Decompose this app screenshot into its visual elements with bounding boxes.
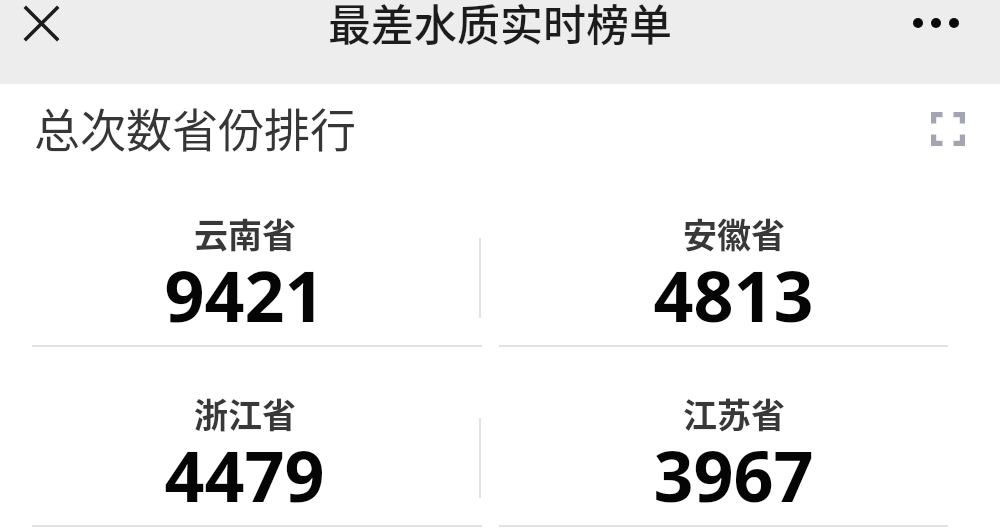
staticText: 4479 [164, 427, 325, 522]
button[interactable]: 浙江省 [0, 346, 489, 526]
staticText: 江苏省 [683, 389, 785, 438]
button[interactable]: More options [908, 0, 964, 46]
button[interactable]: Expand to full screen [923, 104, 973, 154]
button[interactable]: 江苏省 [489, 346, 978, 526]
staticText: 安徽省 [683, 209, 785, 258]
staticText: 3967 [653, 427, 814, 522]
button[interactable]: 云南省 [0, 166, 489, 346]
staticText: 总次数省份排行 [34, 94, 356, 161]
staticText: 9421 [164, 247, 325, 342]
button[interactable]: 安徽省 [489, 166, 978, 346]
button[interactable]: Close [14, 0, 68, 50]
staticText: 云南省 [194, 209, 296, 258]
staticText: 浙江省 [194, 389, 296, 438]
staticText: 4813 [653, 247, 814, 342]
staticText: 最差水质实时榜单 [0, 0, 1000, 53]
